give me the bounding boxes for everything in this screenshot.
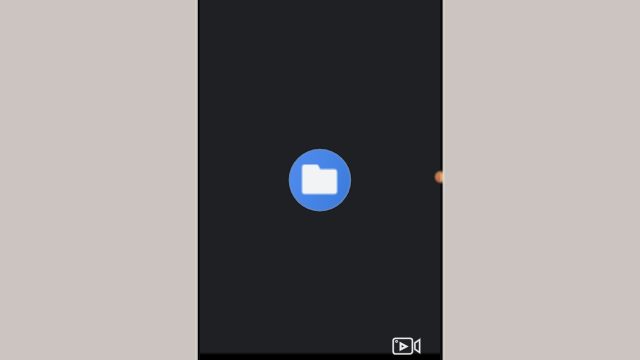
button[interactable]: Files bbox=[289, 149, 351, 211]
button[interactable]: Screen recording bbox=[391, 336, 423, 356]
